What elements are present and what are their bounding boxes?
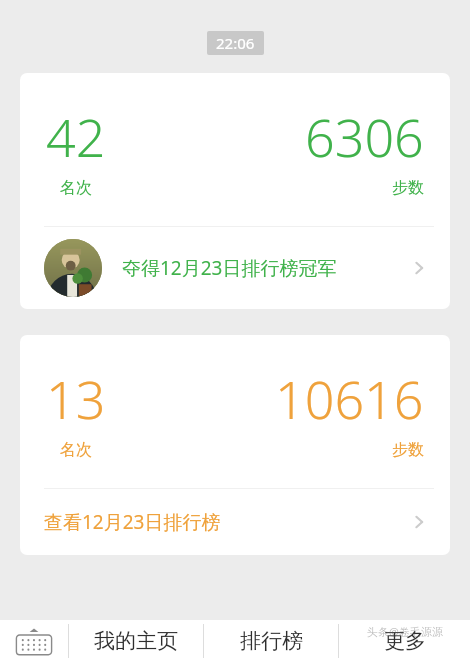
staticText: 步数 <box>392 178 424 198</box>
staticText: 更多 <box>384 628 426 654</box>
staticText: 名次 <box>60 178 92 198</box>
staticText: 查看12月23日排行榜 <box>44 509 221 535</box>
staticText: 10616 <box>275 363 424 434</box>
button[interactable]: 夺得12月23日排行榜冠军 <box>20 227 450 309</box>
staticText: 步数 <box>392 440 424 460</box>
button[interactable]: 更多 <box>339 620 470 662</box>
button[interactable]: 查看12月23日排行榜 <box>20 489 450 555</box>
staticText: 排行榜 <box>240 628 303 654</box>
button[interactable]: 键盘 <box>0 620 68 662</box>
staticText: 夺得12月23日排行榜冠军 <box>122 255 337 281</box>
staticText: 头条@卷毛源源 <box>367 624 443 639</box>
button[interactable]: 我的主页 <box>69 620 203 662</box>
staticText: 13 <box>46 363 106 434</box>
staticText: 名次 <box>60 440 92 460</box>
staticText: 6306 <box>305 101 424 172</box>
staticText: 22:06 <box>216 33 255 53</box>
button[interactable]: 排行榜 <box>204 620 338 662</box>
staticText: 42 <box>46 101 106 172</box>
staticText: 我的主页 <box>94 628 178 654</box>
